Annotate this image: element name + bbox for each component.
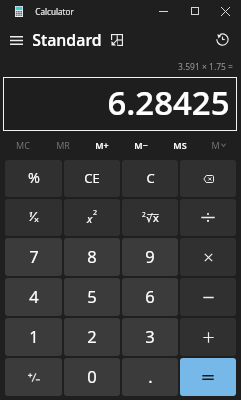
- staticText: MR: [56, 139, 70, 151]
- staticText: 8: [87, 245, 97, 267]
- button[interactable]: 0: [64, 358, 120, 396]
- staticText: .: [148, 365, 153, 387]
- button[interactable]: %: [5, 160, 62, 197]
- staticText: M: [211, 139, 220, 151]
- staticText: Calculator: [35, 6, 74, 17]
- button[interactable]: Close: [210, 0, 241, 22]
- button[interactable]: MS: [160, 131, 199, 159]
- button[interactable]: 3: [122, 318, 178, 356]
- button[interactable]: Positive negative: [5, 358, 62, 396]
- button[interactable]: 7: [5, 238, 62, 276]
- button[interactable]: MC: [3, 131, 43, 159]
- button[interactable]: Minimize: [148, 0, 179, 22]
- staticText: 6.28425: [107, 80, 230, 125]
- button[interactable]: Keep on top: [105, 27, 129, 53]
- staticText: 3: [145, 325, 155, 347]
- staticText: 9: [145, 245, 155, 267]
- button[interactable]: M+: [82, 131, 121, 159]
- staticText: 5: [87, 285, 97, 307]
- button[interactable]: Divide: [180, 199, 236, 236]
- button[interactable]: Open Navigation: [0, 22, 32, 56]
- button[interactable]: 4: [5, 278, 62, 316]
- staticText: 6: [145, 285, 155, 307]
- button[interactable]: Plus: [180, 318, 236, 356]
- staticText: Standard: [32, 29, 102, 51]
- staticText: 0: [87, 365, 97, 387]
- staticText: 2: [142, 210, 146, 219]
- button[interactable]: 1: [5, 318, 62, 356]
- staticText: %: [28, 168, 40, 188]
- button[interactable]: Maximize: [179, 0, 210, 22]
- staticText: C: [146, 169, 155, 187]
- button[interactable]: Reciprocal: [5, 199, 62, 236]
- button[interactable]: Squared: [64, 199, 120, 236]
- button[interactable]: History: [207, 24, 237, 54]
- button[interactable]: Equals: [180, 358, 236, 396]
- staticText: ¹⁄ₓ: [28, 207, 39, 225]
- staticText: 4: [29, 285, 39, 307]
- staticText: M−: [134, 139, 148, 151]
- button[interactable]: MR: [43, 131, 82, 159]
- button[interactable]: 9: [122, 238, 178, 276]
- button[interactable]: .: [122, 358, 178, 396]
- button[interactable]: Multiply: [180, 238, 236, 276]
- button[interactable]: C: [122, 160, 178, 197]
- staticText: 3.591 × 1.75 =: [178, 61, 233, 73]
- button[interactable]: Backspace: [180, 160, 236, 197]
- staticText: MC: [16, 139, 30, 151]
- button[interactable]: Square root: [122, 199, 178, 236]
- button[interactable]: CE: [64, 160, 120, 197]
- staticText: √̅x̅: [146, 212, 159, 224]
- staticText: x: [87, 211, 93, 226]
- staticText: 7: [29, 245, 39, 267]
- staticText: 1: [29, 325, 39, 347]
- button[interactable]: M−: [121, 131, 160, 159]
- staticText: M+: [95, 139, 109, 151]
- button[interactable]: 5: [64, 278, 120, 316]
- staticText: MS: [173, 139, 187, 151]
- button[interactable]: Memory menu: [199, 131, 238, 159]
- staticText: 2: [87, 325, 97, 347]
- button[interactable]: 8: [64, 238, 120, 276]
- button[interactable]: 2: [64, 318, 120, 356]
- button[interactable]: Minus: [180, 278, 236, 316]
- staticText: CE: [84, 169, 100, 187]
- button[interactable]: 6: [122, 278, 178, 316]
- staticText: 2: [93, 208, 98, 218]
